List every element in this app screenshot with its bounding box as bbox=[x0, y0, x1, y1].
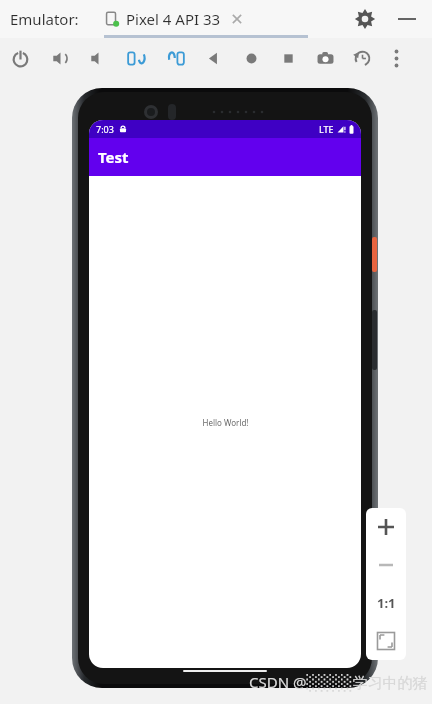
button[interactable]: Volume up bbox=[47, 45, 73, 71]
button[interactable]: Overview bbox=[275, 45, 301, 71]
staticText: Hello World! bbox=[202, 417, 249, 428]
button[interactable]: Power bbox=[7, 45, 33, 71]
button[interactable]: 1:1 bbox=[366, 584, 406, 622]
staticText: LTE bbox=[319, 123, 334, 135]
button[interactable]: Power button bbox=[372, 237, 377, 272]
staticText: Pixel 4 API 33 bbox=[126, 9, 221, 29]
button[interactable]: Rotate history bbox=[349, 45, 375, 71]
button[interactable]: Volume down bbox=[85, 45, 111, 71]
button[interactable]: Zoom out bbox=[366, 546, 406, 584]
staticText: Test bbox=[98, 147, 129, 167]
button[interactable]: Zoom in bbox=[366, 508, 406, 546]
button[interactable]: Minimize bbox=[396, 8, 418, 30]
staticText: 7:03 bbox=[96, 123, 114, 135]
button[interactable]: Screenshot bbox=[312, 45, 338, 71]
button[interactable]: More bbox=[383, 45, 409, 71]
button[interactable]: Pixel 4 API 33 bbox=[104, 9, 245, 29]
button[interactable]: Fit to screen bbox=[366, 622, 406, 660]
button[interactable]: Back bbox=[200, 45, 226, 71]
staticText: Emulator: bbox=[10, 9, 79, 29]
staticText: 1:1 bbox=[377, 594, 396, 612]
button[interactable]: Close tab bbox=[229, 11, 245, 27]
button[interactable]: Volume button bbox=[372, 310, 377, 370]
button[interactable]: Settings bbox=[354, 8, 376, 30]
button[interactable]: Rotate left bbox=[123, 45, 149, 71]
button[interactable]: Rotate right bbox=[162, 45, 188, 71]
button[interactable]: Home bbox=[238, 45, 264, 71]
staticText: CSDN @░░░░学习中的猪 bbox=[249, 672, 428, 692]
